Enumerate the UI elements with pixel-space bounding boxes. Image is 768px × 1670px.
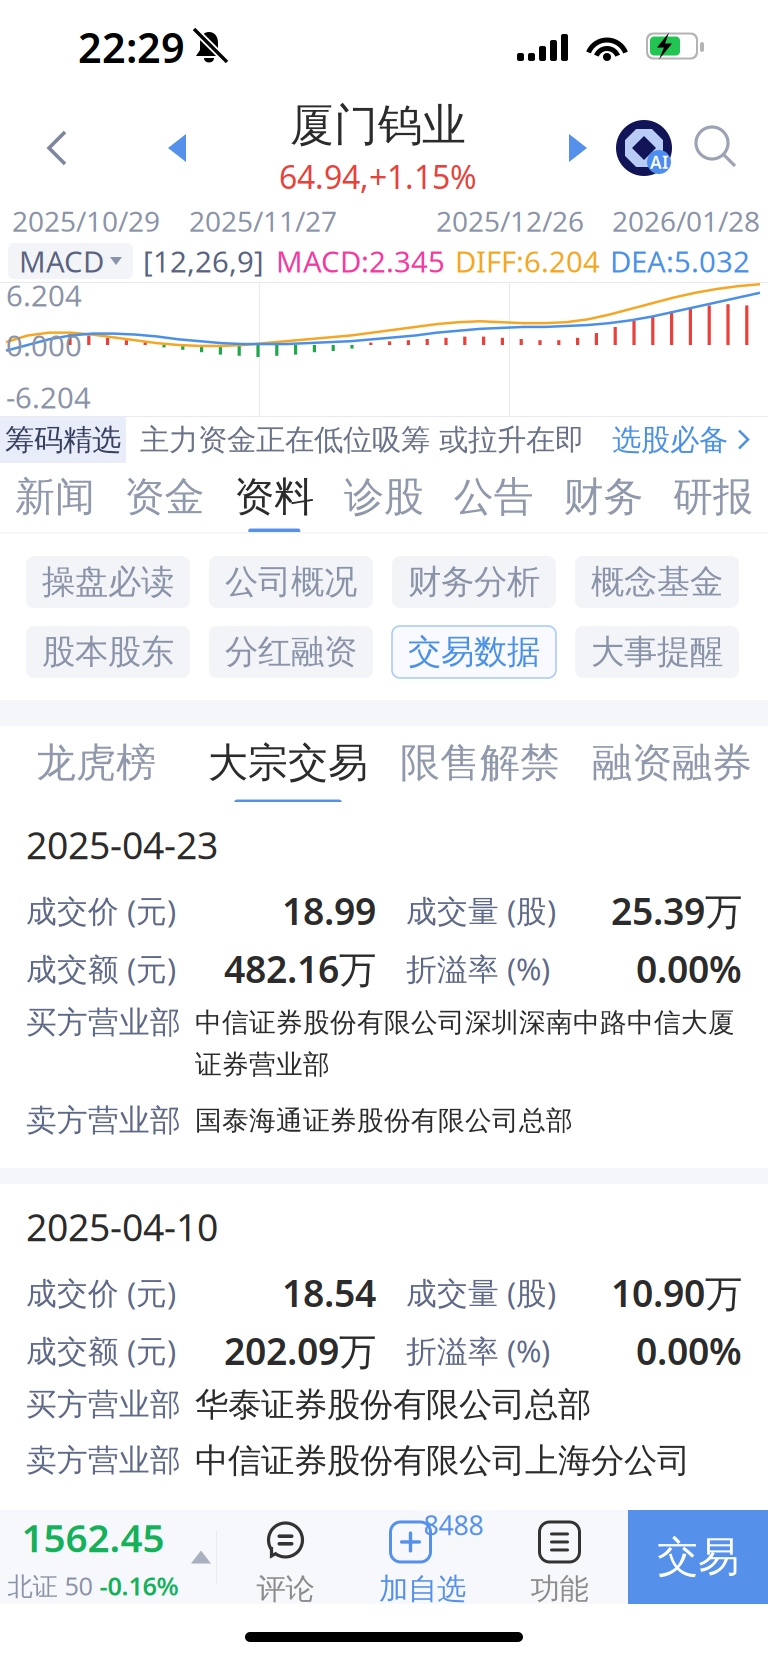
staticText: 评论 [256, 1571, 314, 1607]
staticText: 成交价 (元) [26, 1272, 176, 1313]
staticText: 中信证券股份有限公司深圳深南中路中信大厦 [195, 1006, 735, 1039]
button[interactable]: 筹码精选 [0, 417, 768, 463]
button[interactable]: 融资融券 [576, 726, 768, 802]
staticText: 分红融资 [225, 631, 357, 672]
staticText: 成交价 (元) [26, 890, 176, 931]
staticText: 财务 [563, 472, 643, 521]
staticText: 22:29 [78, 20, 185, 74]
button[interactable]: 诊股 [329, 463, 439, 532]
staticText: 限售解禁 [400, 738, 560, 787]
button[interactable]: 财务分析 [392, 556, 556, 608]
staticText: 资金 [125, 472, 205, 521]
staticText: 卖方营业部 [26, 1442, 181, 1479]
staticText: 龙虎榜 [36, 738, 156, 787]
button[interactable]: 公司概况 [209, 556, 373, 608]
button[interactable]: 资金 [110, 463, 219, 532]
staticText: 诊股 [344, 472, 424, 521]
button[interactable]: 评论 [217, 1510, 354, 1604]
staticText: 筹码精选 [5, 422, 121, 458]
staticText: DEA:5.032 [610, 241, 750, 280]
button[interactable]: 股本股东 [26, 626, 190, 678]
staticText: 股本股东 [42, 631, 174, 672]
staticText: 融资融券 [592, 738, 752, 787]
staticText: MACD [19, 241, 104, 280]
button[interactable]: 研报 [658, 463, 768, 532]
staticText: 成交额 (元) [26, 1330, 176, 1371]
staticText: 25.39万 [611, 886, 742, 935]
button[interactable]: 8488 [354, 1510, 491, 1604]
button[interactable]: AI assistant [614, 94, 674, 202]
staticText: 2026/01/28 [612, 202, 760, 240]
staticText: 成交量 (股) [406, 1272, 556, 1313]
staticText: 大事提醒 [591, 631, 723, 672]
staticText: 北证 50 [7, 1569, 92, 1602]
button[interactable]: MACD [8, 243, 133, 279]
staticText: [12,26,9] [143, 241, 264, 280]
staticText: 18.54 [282, 1268, 376, 1317]
staticText: 加自选 [379, 1571, 466, 1607]
staticText: 买方营业部 [26, 1004, 181, 1041]
button[interactable]: 大宗交易 [192, 726, 384, 802]
staticText: 2025/11/27 [189, 202, 337, 240]
button[interactable]: Next stock [551, 94, 606, 202]
staticText: 0.000 [6, 325, 82, 364]
staticText: 新闻 [15, 472, 95, 521]
button[interactable]: Previous stock [150, 94, 205, 202]
staticText: 交易 [657, 1532, 739, 1582]
staticText: 202.09万 [224, 1326, 376, 1375]
staticText: 8488 [423, 1507, 483, 1543]
staticText: 卖方营业部 [26, 1102, 181, 1139]
button[interactable]: 大事提醒 [575, 626, 739, 678]
staticText: 2025-04-10 [26, 1202, 218, 1252]
staticText: 0.00% [636, 1326, 742, 1375]
staticText: MACD:2.345 [276, 241, 445, 280]
button[interactable]: Back [20, 94, 94, 202]
staticText: 折溢率 (%) [406, 948, 550, 989]
staticText: 2025-04-23 [26, 820, 218, 870]
button[interactable]: 1562.45 [0, 1510, 216, 1604]
staticText: 公司概况 [225, 561, 357, 602]
staticText: 2025/10/29 [12, 202, 160, 240]
staticText: 1562.45 [21, 1511, 164, 1563]
staticText: DIFF:6.204 [455, 241, 600, 280]
staticText: 64.94,+1.15% [279, 155, 477, 198]
staticText: -6.204 [6, 377, 91, 416]
button[interactable]: 限售解禁 [384, 726, 576, 802]
staticText: 证券营业部 [195, 1048, 330, 1081]
button[interactable]: 功能 [491, 1510, 628, 1604]
staticText: 国泰海通证券股份有限公司总部 [195, 1104, 573, 1137]
staticText: 成交额 (元) [26, 948, 176, 989]
staticText: 主力资金正在低位吸筹 或拉升在即 [140, 422, 584, 458]
staticText: -0.16% [99, 1569, 178, 1602]
staticText: 功能 [530, 1571, 588, 1607]
button[interactable]: 资料 [219, 463, 329, 532]
button[interactable]: 交易数据 [392, 626, 556, 678]
button[interactable]: 龙虎榜 [0, 726, 192, 802]
button[interactable]: 新闻 [0, 463, 110, 532]
button[interactable]: 概念基金 [575, 556, 739, 608]
staticText: 中信证券股份有限公司上海分公司 [195, 1440, 690, 1481]
staticText: 研报 [673, 472, 753, 521]
staticText: 成交量 (股) [406, 890, 556, 931]
staticText: 公告 [454, 472, 534, 521]
button[interactable]: 操盘必读 [26, 556, 190, 608]
staticText: 买方营业部 [26, 1386, 181, 1423]
staticText: 2025/12/26 [436, 202, 584, 240]
button[interactable]: 分红融资 [209, 626, 373, 678]
staticText: 18.99 [282, 886, 376, 935]
button[interactable]: Search [696, 94, 738, 202]
staticText: 厦门钨业 [290, 98, 466, 152]
staticText: 选股必备 [612, 422, 728, 458]
staticText: 交易数据 [408, 631, 540, 672]
staticText: 大宗交易 [208, 738, 368, 787]
staticText: 操盘必读 [42, 561, 174, 602]
staticText: 资料 [234, 472, 314, 521]
button[interactable]: 交易 [628, 1510, 768, 1604]
staticText: 6.204 [6, 275, 82, 314]
staticText: 0.00% [636, 944, 742, 993]
staticText: 482.16万 [224, 944, 376, 993]
button[interactable]: 财务 [548, 463, 658, 532]
button[interactable]: 公告 [439, 463, 548, 532]
staticText: 华泰证券股份有限公司总部 [195, 1384, 591, 1425]
staticText: 财务分析 [408, 561, 540, 602]
